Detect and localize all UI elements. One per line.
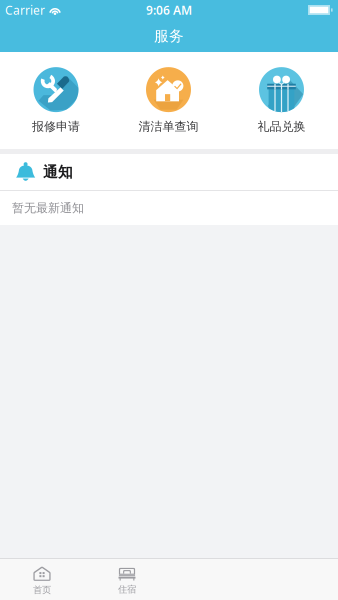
button[interactable]: 住宿	[84, 559, 170, 600]
staticText: 清洁单查询	[138, 119, 198, 134]
staticText: 报修申请	[32, 119, 80, 134]
button[interactable]: 首页	[0, 559, 84, 600]
staticText: 住宿	[118, 584, 136, 595]
button[interactable]: 清洁单查询	[112, 53, 225, 147]
button[interactable]: 报修申请	[0, 53, 112, 147]
staticText: 首页	[33, 584, 51, 596]
staticText: 暂无最新通知	[12, 201, 84, 215]
button[interactable]: 礼品兑换	[225, 53, 338, 147]
staticText: 通知	[43, 163, 73, 181]
staticText: 礼品兑换	[257, 119, 305, 134]
staticText: 服务	[154, 27, 184, 45]
staticText: 9:06 AM	[146, 2, 192, 18]
staticText: Carrier	[5, 2, 45, 18]
